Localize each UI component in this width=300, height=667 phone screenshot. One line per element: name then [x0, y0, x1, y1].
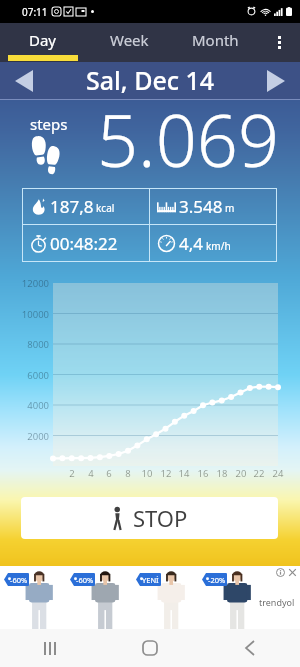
staticText: 4 [82, 467, 100, 480]
button[interactable]: Next day [252, 62, 300, 100]
button[interactable]: -60% [0, 566, 300, 629]
staticText: Day [29, 30, 57, 50]
staticText: 187,8 [50, 195, 94, 218]
staticText: 3.548 [179, 195, 223, 218]
staticText: 6 [100, 467, 118, 480]
staticText: Month [192, 30, 239, 50]
button[interactable]: Day [0, 23, 86, 62]
button[interactable]: More options [258, 23, 300, 62]
staticText: 16 [194, 467, 212, 480]
button[interactable]: Month [172, 23, 258, 62]
staticText: 10000 [0, 308, 49, 321]
staticText: 12 [157, 467, 175, 480]
button[interactable]: Week [86, 23, 172, 62]
staticText: STOP [133, 503, 188, 533]
staticText: kcal [96, 201, 115, 215]
other: Close ad [288, 568, 297, 577]
button[interactable]: Previous day [0, 62, 48, 100]
staticText: 20 [232, 467, 250, 480]
button[interactable]: Recent apps [0, 629, 100, 667]
staticText: 10 [138, 467, 156, 480]
staticText: 07:11 [22, 5, 48, 19]
other: Ad info [276, 568, 285, 577]
staticText: 8000 [0, 338, 49, 351]
staticText: YENİ [142, 575, 159, 585]
staticText: 14 [175, 467, 193, 480]
staticText: 8 [119, 467, 137, 480]
staticText: Sal, Dec 14 [86, 63, 215, 97]
staticText: km/h [206, 239, 231, 253]
staticText: -60% [76, 575, 94, 585]
button[interactable]: Home [100, 629, 200, 667]
staticText: -60% [10, 575, 28, 585]
staticText: m [225, 201, 235, 215]
staticText: steps [30, 114, 68, 134]
staticText: -20% [208, 575, 226, 585]
staticText: 5.069 [97, 90, 280, 188]
staticText: 2 [63, 467, 81, 480]
button[interactable]: STOP [21, 497, 278, 539]
button[interactable]: Back [200, 629, 300, 667]
staticText: 4,4 [179, 232, 204, 255]
staticText: trendyol [259, 596, 295, 608]
staticText: 12000 [0, 277, 49, 290]
staticText: 6000 [0, 369, 49, 382]
staticText: 18 [213, 467, 231, 480]
staticText: 24 [269, 467, 287, 480]
staticText: 2000 [0, 430, 49, 443]
staticText: 4000 [0, 399, 49, 412]
staticText: Week [110, 30, 149, 50]
staticText: 00:48:22 [50, 232, 118, 255]
staticText: 22 [250, 467, 268, 480]
